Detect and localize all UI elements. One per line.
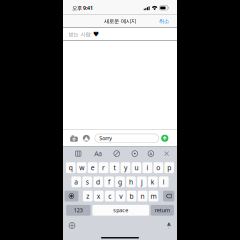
staticText: s (86, 177, 89, 186)
staticText: z (86, 192, 89, 200)
staticText: Sorry (99, 135, 112, 142)
staticText: 취소 (159, 18, 169, 24)
button[interactable]: p (164, 162, 174, 173)
button[interactable]: o (153, 162, 163, 173)
button[interactable]: y (121, 162, 130, 173)
staticText: ♥ (93, 30, 99, 38)
staticText: 123 (74, 207, 83, 214)
button[interactable]: b (127, 191, 136, 201)
staticText: f (108, 177, 110, 186)
button[interactable]: Send (161, 135, 168, 142)
staticText: o (156, 163, 160, 172)
staticText: k (151, 177, 155, 186)
button[interactable]: Handwriting (148, 151, 154, 157)
button[interactable]: e (88, 162, 97, 173)
staticText: c (108, 192, 111, 200)
button[interactable]: a (71, 176, 81, 187)
button[interactable]: 취소 (156, 15, 172, 27)
button[interactable]: r (99, 162, 108, 173)
button[interactable]: Audio message (132, 151, 138, 157)
button[interactable]: f (104, 176, 114, 187)
staticText: e (91, 163, 95, 172)
button[interactable]: 123 (66, 205, 91, 216)
button[interactable]: Keyboard layout (75, 151, 81, 157)
staticText: t (113, 163, 115, 172)
staticText: h (129, 177, 133, 186)
button[interactable]: h (126, 176, 136, 187)
button[interactable]: z (83, 191, 93, 201)
button[interactable]: l (159, 176, 169, 187)
staticText: return (155, 207, 170, 214)
button[interactable]: Dismiss keyboard (164, 151, 170, 157)
button[interactable]: m (149, 191, 158, 201)
button[interactable]: Dictation (167, 222, 171, 229)
staticText: n (141, 192, 145, 200)
button[interactable]: d (93, 176, 103, 187)
staticText: space (113, 207, 128, 214)
staticText: r (102, 163, 105, 172)
button[interactable]: w (77, 162, 86, 173)
button[interactable]: Check (114, 151, 120, 157)
button[interactable]: return (151, 205, 174, 216)
button[interactable]: t (110, 162, 119, 173)
button[interactable]: Shift (64, 191, 78, 201)
button[interactable]: n (138, 191, 147, 201)
button[interactable]: Switch keyboard (69, 222, 75, 228)
button[interactable]: g (115, 176, 125, 187)
staticText: 받는 사람: (68, 31, 91, 38)
button[interactable]: Camera (70, 135, 78, 142)
staticText: w (79, 163, 84, 172)
staticText: g (118, 177, 122, 186)
staticText: A (149, 151, 152, 156)
button[interactable]: Delete (163, 191, 174, 201)
staticText: i (146, 163, 148, 172)
staticText: a (74, 177, 78, 186)
staticText: x (97, 192, 101, 200)
staticText: u (134, 163, 138, 172)
staticText: l (163, 177, 165, 186)
staticText: p (167, 163, 171, 172)
button[interactable]: u (132, 162, 141, 173)
button[interactable]: s (82, 176, 92, 187)
button[interactable]: c (105, 191, 114, 201)
button[interactable]: v (116, 191, 125, 201)
button[interactable]: Apps (83, 135, 90, 142)
staticText: 오후 9:41 (72, 4, 93, 11)
button[interactable]: Aa (94, 149, 102, 158)
button[interactable]: q (66, 162, 75, 173)
button[interactable]: j (137, 176, 147, 187)
staticText: m (150, 192, 156, 200)
staticText: j (141, 177, 143, 186)
staticText: b (130, 192, 134, 200)
staticText: d (96, 177, 100, 186)
button[interactable]: k (148, 176, 158, 187)
staticText: 새로운 메시지 (104, 18, 136, 24)
staticText: Aa (94, 149, 102, 158)
button[interactable]: x (94, 191, 104, 201)
button[interactable]: i (143, 162, 152, 173)
staticText: q (69, 163, 73, 172)
staticText: v (119, 192, 122, 200)
staticText: y (124, 163, 127, 172)
button[interactable]: space (92, 205, 149, 216)
